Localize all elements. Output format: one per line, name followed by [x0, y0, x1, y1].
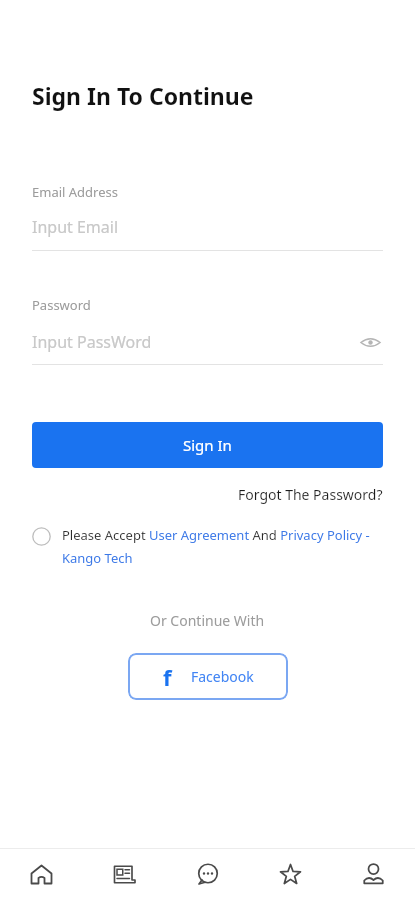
button[interactable]: Please Accept User Agreement And Privacy…	[32, 526, 389, 567]
staticText: Facebook	[191, 667, 254, 686]
button[interactable]: f	[128, 653, 288, 700]
staticText: Forgot The Password?	[238, 485, 383, 504]
button[interactable]: Profile	[332, 849, 415, 899]
button[interactable]: Show password	[357, 329, 383, 355]
button[interactable]: News	[83, 849, 166, 899]
button[interactable]: Messages	[166, 849, 249, 899]
staticText: Sign In To Continue	[32, 80, 254, 111]
button[interactable]: Sign In	[32, 422, 383, 468]
button[interactable]: Favorites	[249, 849, 332, 899]
staticText: f	[163, 662, 172, 692]
button[interactable]: Forgot The Password?	[238, 485, 383, 504]
staticText: Sign In	[183, 435, 232, 455]
staticText: Input Email	[32, 216, 119, 238]
staticText: Password	[32, 296, 91, 314]
button[interactable]: Home	[0, 849, 83, 899]
staticText: Input PassWord	[32, 331, 152, 353]
button[interactable]: Input PassWord	[32, 331, 357, 353]
button[interactable]: Input Email	[32, 216, 383, 238]
staticText: Email Address	[32, 183, 118, 201]
staticText: Or Continue With	[150, 611, 265, 630]
staticText: Please Accept User Agreement And Privacy…	[62, 526, 389, 567]
